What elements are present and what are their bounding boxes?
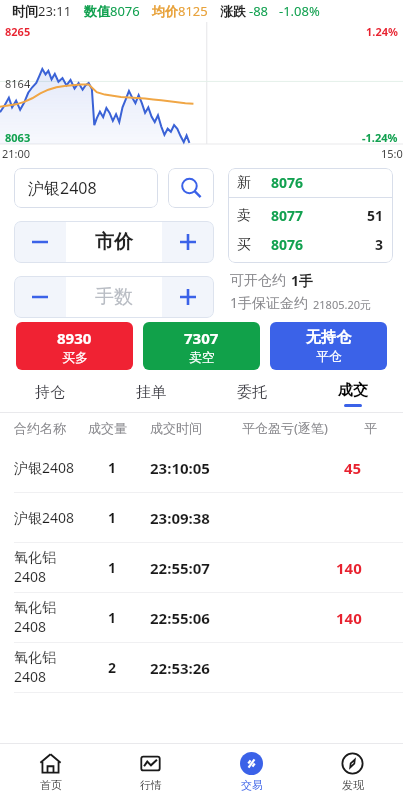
staticText: -1.24% [362,130,398,145]
staticText: 1 [108,608,150,627]
staticText: 3 [375,235,384,254]
button[interactable]: 无持仓 [270,322,387,370]
staticText: 时间 [12,3,38,19]
button[interactable]: 发现 [302,744,403,800]
staticText: 新 [237,174,251,192]
staticText: 140 [336,558,362,578]
button[interactable]: 沪银2408 [14,168,158,208]
button[interactable]: 持仓 [0,376,100,412]
staticText: -1.08% [279,2,320,20]
staticText: 45 [344,458,362,478]
staticText: 沪银2408 [28,177,97,199]
staticText: 无持仓 [306,328,351,347]
staticText: 140 [336,608,362,628]
staticText: 成交量 [88,420,150,436]
staticText: 1手保证金约 [230,293,309,312]
staticText: 均价 [152,3,178,19]
staticText: 首页 [40,778,62,792]
staticText: 8076 [271,235,304,254]
staticText: 23:10:05 [150,458,250,478]
button[interactable]: 氧化铝2408 [0,593,403,643]
staticText: 合约名称 [14,420,88,436]
button[interactable]: 成交 [302,376,403,412]
button[interactable]: 减少 [14,276,66,318]
staticText: 1手 [291,271,314,290]
staticText: 卖空 [189,349,215,365]
staticText: 涨跌 [220,3,246,19]
button[interactable]: 手数 [66,276,162,318]
staticText: 成交时间 [150,420,242,436]
staticText: 手数 [95,285,133,309]
staticText: 行情 [140,778,162,792]
staticText: 发现 [342,778,364,792]
button[interactable]: 挂单 [100,376,201,412]
button[interactable]: 交易 [201,744,302,800]
staticText: 可开仓约 [230,272,286,290]
staticText: 1 [108,458,150,477]
staticText: 22:55:07 [150,558,250,578]
staticText: 8930 [57,328,92,348]
staticText: 8076 [271,173,304,192]
staticText: 数值 [84,3,110,19]
button[interactable]: 增加 [162,221,214,263]
button[interactable]: 首页 [0,744,100,800]
staticText: 23:09:38 [150,508,250,528]
staticText: 买多 [62,349,88,365]
staticText: 氧化铝2408 [14,649,88,686]
staticText: 8077 [271,206,304,225]
staticText: 沪银2408 [14,508,88,527]
staticText: 挂单 [136,383,166,402]
button[interactable]: 市价 [66,221,162,263]
button[interactable]: 增加 [162,276,214,318]
staticText: 51 [367,206,384,225]
button[interactable]: 沪银2408 [0,443,403,493]
button[interactable]: 搜索 [168,168,214,208]
staticText: 持仓 [35,383,65,402]
staticText: 8076 [110,2,140,20]
button[interactable]: 委托 [201,376,302,412]
staticText: 8125 [178,2,208,20]
button[interactable]: 8930 [16,322,133,370]
button[interactable]: 氧化铝2408 [0,543,403,593]
staticText: 7307 [184,328,219,348]
button[interactable]: 减少 [14,221,66,263]
staticText: 22:55:06 [150,608,250,628]
staticText: 22:53:26 [150,658,250,678]
staticText: 成交 [338,381,368,400]
button[interactable]: 7307 [143,322,260,370]
staticText: 平仓 [316,348,342,364]
staticText: 2 [108,658,150,677]
staticText: 平 [364,420,377,436]
staticText: 卖 [237,207,251,225]
staticText: 委托 [237,383,267,402]
staticText: 15:0 [381,146,403,161]
staticText: 交易 [241,778,263,792]
staticText: 21:00 [2,146,31,161]
button[interactable]: 沪银2408 [0,493,403,543]
staticText: 氧化铝2408 [14,599,88,636]
staticText: 买 [237,236,251,254]
staticText: 1 [108,508,150,527]
staticText: 23:11 [38,2,72,20]
staticText: 市价 [95,230,133,254]
staticText: 8164 [5,76,31,91]
staticText: 8063 [5,130,31,145]
button[interactable]: 氧化铝2408 [0,643,403,693]
staticText: 沪银2408 [14,458,88,477]
staticText: 1 [108,558,150,577]
button[interactable]: 行情 [100,744,201,800]
staticText: -88 [249,2,269,20]
staticText: 21805.20元 [313,297,371,312]
staticText: 氧化铝2408 [14,549,88,586]
staticText: 1.24% [366,24,398,39]
staticText: 8265 [5,24,31,39]
staticText: 平仓盈亏(逐笔) [242,419,364,437]
